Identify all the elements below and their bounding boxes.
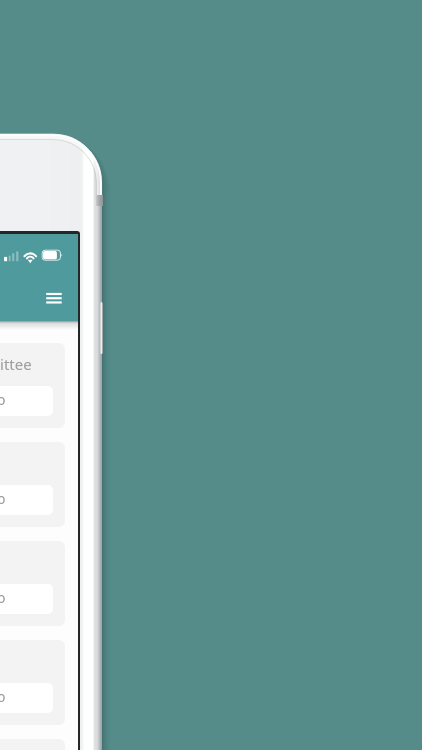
button[interactable]: Details of the member — [0, 541, 65, 626]
staticText: Type the committee name here also — [0, 391, 6, 409]
button[interactable]: Name of the parliamentary committee — [0, 343, 65, 428]
other: Volume button — [100, 302, 103, 354]
staticText: Type the committee name here also — [0, 589, 6, 607]
staticText: Type the committee name here also — [0, 688, 6, 706]
button[interactable]: Open navigation menu — [42, 286, 66, 310]
button[interactable]: Details of the member — [0, 640, 65, 725]
button[interactable]: Details of the member — [0, 442, 65, 527]
other: Silent switch — [96, 195, 103, 206]
staticText: Name of the parliamentary committee — [0, 354, 32, 374]
staticText: Type the committee name here also — [0, 490, 6, 508]
